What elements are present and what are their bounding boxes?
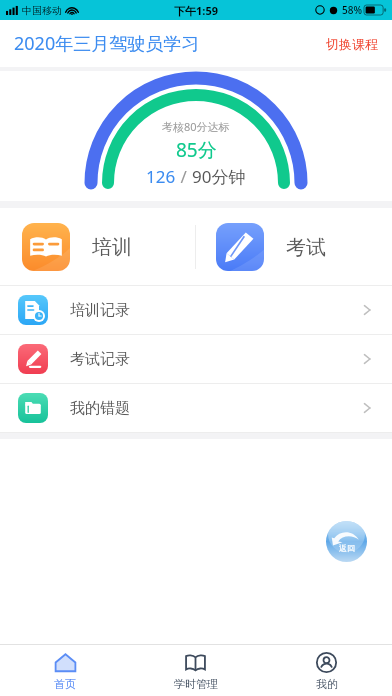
staticText: 58% <box>342 3 362 17</box>
button[interactable]: 切换课程 <box>312 28 392 60</box>
staticText: 考试记录 <box>70 350 130 369</box>
staticText: 切换课程 <box>326 36 378 52</box>
staticText: 126 <box>146 165 176 188</box>
staticText: 中国移动 <box>22 4 62 17</box>
staticText: 培训记录 <box>70 301 130 320</box>
staticText: 考核80分达标 <box>162 119 230 134</box>
staticText: 我的 <box>316 677 338 691</box>
button[interactable]: 培训记录 <box>0 286 392 334</box>
staticText: 返回 <box>339 543 355 553</box>
staticText: 2020年三月驾驶员学习 <box>14 31 200 56</box>
button[interactable]: 学时管理 <box>130 645 261 696</box>
button[interactable]: 我的 <box>261 645 392 696</box>
button[interactable]: 考试 <box>196 208 392 286</box>
staticText: 学时管理 <box>174 677 218 691</box>
staticText: 下午1:59 <box>174 3 218 18</box>
staticText: 培训 <box>92 235 132 260</box>
button[interactable]: 培训 <box>0 208 195 286</box>
button[interactable]: 我的错题 <box>0 384 392 432</box>
staticText: / <box>176 165 192 188</box>
staticText: 85分 <box>176 137 217 163</box>
staticText: 我的错题 <box>70 399 130 418</box>
staticText: 考试 <box>286 235 326 260</box>
staticText: 首页 <box>54 677 76 691</box>
button[interactable]: 返回 <box>326 521 367 562</box>
button[interactable]: 首页 <box>0 645 130 696</box>
staticText: 90分钟 <box>192 165 246 188</box>
button[interactable]: 考试记录 <box>0 335 392 383</box>
